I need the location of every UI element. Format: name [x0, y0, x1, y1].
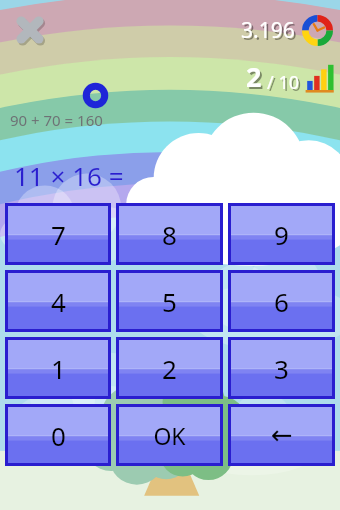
button[interactable]: 2 — [246, 58, 336, 95]
button[interactable]: 5 — [116, 270, 223, 332]
button[interactable]: 9 — [228, 203, 335, 265]
staticText: OK — [153, 420, 186, 451]
button[interactable]: OK — [116, 404, 223, 466]
staticText: 2 — [162, 351, 177, 386]
other: Statistics — [304, 63, 336, 93]
staticText: 11 × 16 = — [14, 158, 124, 193]
staticText: ← — [271, 420, 293, 450]
staticText: / 10 — [269, 72, 301, 97]
staticText: 8 — [162, 217, 177, 252]
button[interactable]: 2 — [116, 337, 223, 399]
staticText: 2 — [246, 58, 262, 95]
staticText: 4 — [51, 284, 66, 319]
button[interactable]: 6 — [228, 270, 335, 332]
staticText: 5 — [162, 284, 177, 319]
button[interactable]: 8 — [116, 203, 223, 265]
staticText: / 10 — [267, 70, 299, 95]
button[interactable]: 0 — [5, 404, 111, 466]
staticText: 6 — [274, 284, 289, 319]
button[interactable]: 1 — [5, 337, 111, 399]
button[interactable]: 3.196 — [241, 14, 334, 47]
staticText: 9 — [274, 217, 289, 252]
staticText: 90 + 70 = 160 — [10, 110, 103, 130]
button[interactable]: Close — [8, 8, 52, 52]
button[interactable]: 7 — [5, 203, 111, 265]
staticText: 3.196 — [243, 18, 297, 47]
button[interactable]: 4 — [5, 270, 111, 332]
other: Time — [301, 14, 334, 47]
staticText: 3.196 — [241, 16, 295, 45]
staticText: 2 — [248, 60, 264, 97]
button[interactable]: 3 — [228, 337, 335, 399]
staticText: 0 — [51, 418, 66, 453]
staticText: 7 — [51, 217, 66, 252]
staticText: 3 — [274, 351, 289, 386]
button[interactable]: ← — [228, 404, 335, 466]
staticText: 1 — [51, 351, 66, 386]
